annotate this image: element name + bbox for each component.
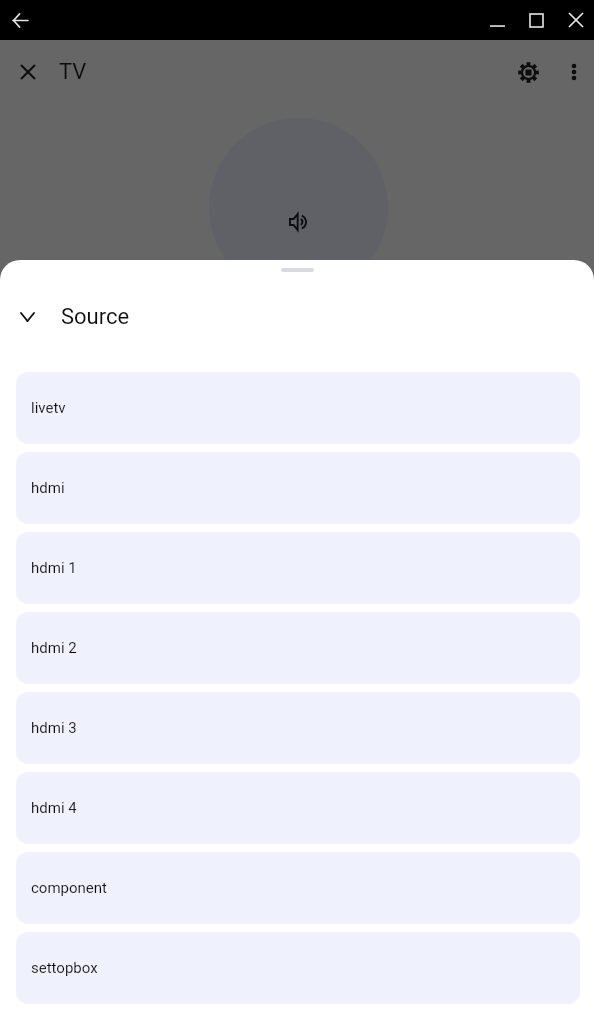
staticText: Source	[61, 304, 130, 330]
button[interactable]: hdmi 2	[16, 612, 580, 684]
button[interactable]: Minimize	[481, 4, 513, 36]
staticText: component	[31, 879, 107, 897]
button[interactable]: hdmi 1	[16, 532, 580, 604]
button[interactable]: Volume	[209, 118, 388, 297]
staticText: hdmi 3	[31, 719, 77, 737]
button[interactable]: Close	[560, 4, 592, 36]
button[interactable]: Maximize	[520, 4, 552, 36]
staticText: hdmi 4	[31, 799, 77, 817]
button[interactable]: Settings	[508, 52, 548, 92]
staticText: livetv	[31, 399, 66, 417]
staticText: hdmi 1	[31, 559, 77, 577]
button[interactable]: livetv	[16, 372, 580, 444]
staticText: hdmi 2	[31, 639, 77, 657]
button[interactable]: settopbox	[16, 932, 580, 1004]
button[interactable]: hdmi 3	[16, 692, 580, 764]
staticText: TV	[59, 59, 87, 85]
button[interactable]: More options	[554, 52, 594, 92]
button[interactable]: Close	[8, 52, 48, 92]
staticText: hdmi	[31, 479, 65, 497]
staticText: settopbox	[31, 959, 98, 977]
button[interactable]: component	[16, 852, 580, 924]
button[interactable]: Source	[0, 295, 594, 339]
button[interactable]: hdmi	[16, 452, 580, 524]
button[interactable]: hdmi 4	[16, 772, 580, 844]
button[interactable]: Back	[5, 5, 36, 36]
